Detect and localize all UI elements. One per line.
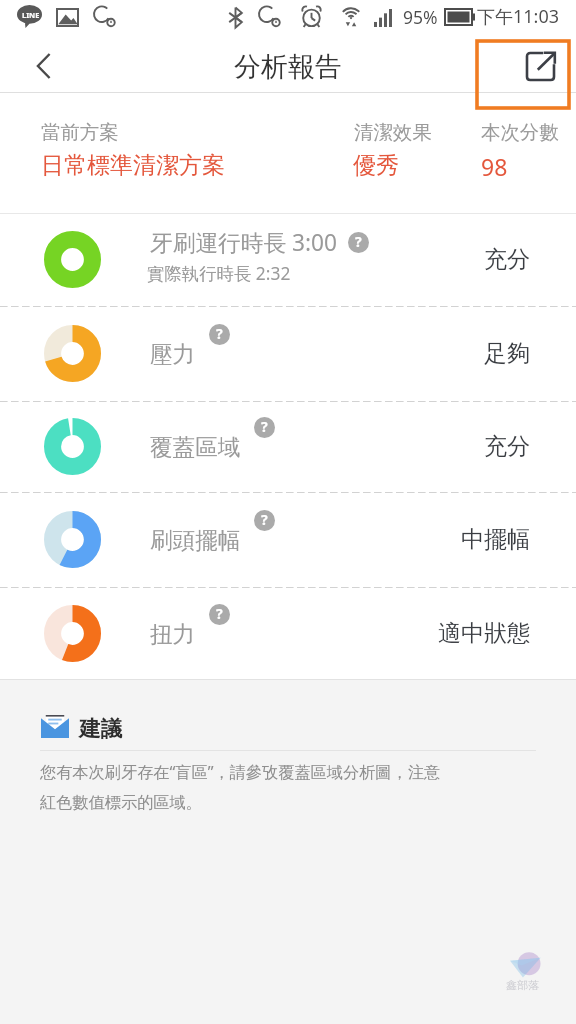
staticText: 適中狀態 — [438, 619, 530, 648]
button[interactable]: Help — [348, 232, 369, 253]
staticText: ? — [261, 417, 268, 436]
staticText: 壓力 — [150, 340, 196, 368]
staticText: ? — [355, 232, 362, 251]
staticText: 下午11:03 — [477, 4, 560, 29]
staticText: LINE — [22, 10, 40, 20]
button[interactable]: Help — [209, 604, 230, 625]
staticText: 充分 — [484, 245, 530, 274]
button[interactable]: Help — [254, 510, 275, 531]
staticText: 分析報告 — [234, 50, 342, 84]
staticText: 扭力 — [150, 620, 196, 648]
staticText: 清潔效果 — [354, 120, 432, 144]
button[interactable]: 壓力 — [0, 306, 576, 401]
button[interactable]: Back — [0, 36, 88, 93]
staticText: ? — [216, 604, 223, 623]
staticText: 日常標準清潔方案 — [41, 151, 225, 180]
staticText: 當前方案 — [41, 120, 119, 144]
staticText: 本次分數 — [481, 120, 559, 144]
staticText: 實際執行時長 2:32 — [147, 261, 291, 285]
staticText: 鑫部落 — [506, 978, 539, 992]
button[interactable]: Help — [209, 324, 230, 345]
button[interactable]: 扭力 — [0, 587, 576, 680]
staticText: 您有本次刷牙存在“盲區”，請參攷覆蓋區域分析圖，注意 — [40, 761, 441, 783]
staticText: 建議 — [79, 715, 122, 742]
staticText: 中擺幅 — [461, 525, 530, 554]
staticText: 足夠 — [484, 339, 530, 368]
staticText: 刷頭擺幅 — [150, 526, 241, 554]
button[interactable]: 刷頭擺幅 — [0, 492, 576, 587]
staticText: ? — [216, 324, 223, 343]
button[interactable]: Share — [477, 41, 569, 108]
button[interactable]: 覆蓋區域 — [0, 401, 576, 492]
button[interactable]: 牙刷運行時長 3:00 — [0, 213, 576, 306]
staticText: ? — [261, 510, 268, 529]
staticText: 紅色數值標示的區域。 — [40, 792, 202, 812]
staticText: 牙刷運行時長 3:00 — [150, 227, 338, 258]
staticText: 優秀 — [353, 151, 399, 180]
staticText: 充分 — [484, 432, 530, 461]
staticText: 覆蓋區域 — [150, 433, 241, 461]
staticText: 95% — [403, 5, 438, 29]
button[interactable]: Help — [254, 417, 275, 438]
staticText: 98 — [481, 151, 508, 182]
